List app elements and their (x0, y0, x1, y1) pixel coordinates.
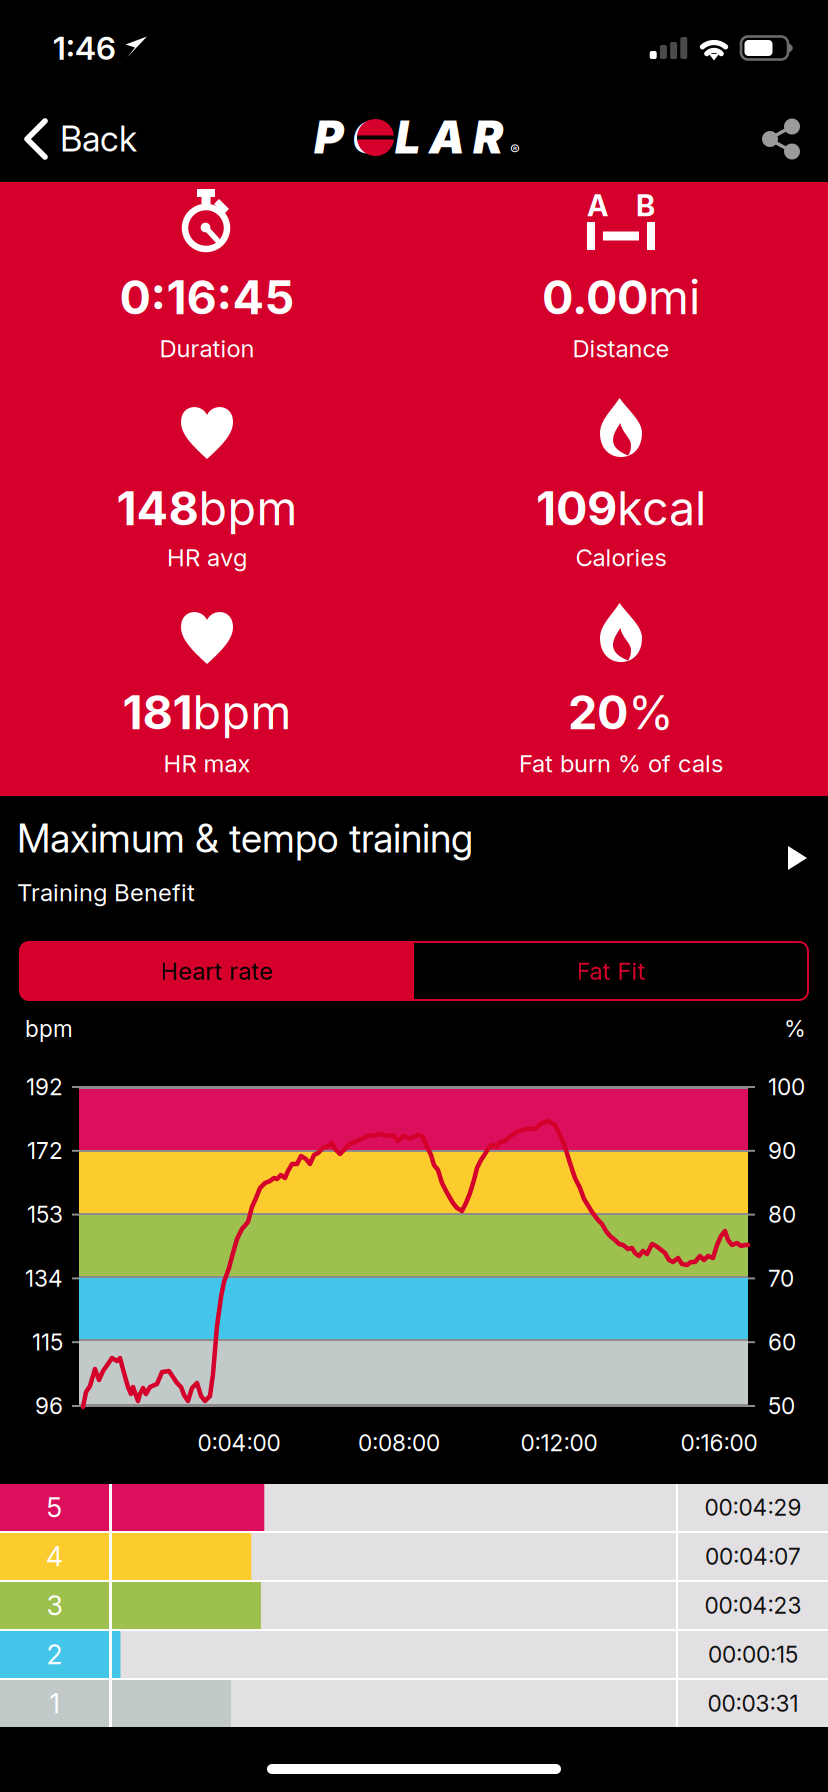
staticText: bpm (198, 480, 297, 536)
staticText: bpm (192, 684, 291, 740)
staticText: % (784, 1015, 806, 1042)
staticText: 1:46 (53, 29, 116, 67)
staticText: B (636, 188, 655, 223)
staticText: 0:12:00 (520, 1429, 597, 1457)
staticText: 115 (32, 1328, 63, 1356)
staticText: Duration (159, 334, 254, 363)
staticText: 96 (35, 1392, 63, 1420)
staticText: 50 (768, 1392, 795, 1420)
button[interactable]: Back (0, 96, 157, 182)
staticText: A (587, 188, 608, 223)
staticText: ® (510, 141, 520, 159)
staticText: mi (648, 269, 700, 325)
staticText: 90 (768, 1137, 796, 1164)
staticText: Training Benefit (17, 878, 195, 907)
staticText: 172 (27, 1137, 63, 1164)
staticText: 148 (116, 480, 198, 536)
staticText: HR avg (167, 543, 247, 572)
button[interactable]: Heart rate (20, 942, 414, 1000)
staticText: 0:16:45 (119, 269, 294, 325)
staticText: 4 (46, 1540, 63, 1573)
staticText: 100 (768, 1073, 805, 1101)
staticText: 192 (26, 1073, 63, 1101)
staticText: 2 (46, 1638, 62, 1671)
staticText: 00:03:31 (707, 1690, 798, 1717)
staticText: HR max (163, 749, 250, 778)
staticText: bpm (25, 1015, 73, 1042)
staticText: 1 (49, 1687, 59, 1720)
staticText: kcal (617, 480, 706, 536)
staticText: 153 (27, 1201, 63, 1228)
staticText: Back (60, 118, 137, 160)
staticText: 0:04:00 (197, 1429, 280, 1457)
staticText: 0:08:00 (358, 1429, 440, 1457)
staticText: 3 (46, 1589, 62, 1622)
staticText: 80 (768, 1201, 796, 1228)
staticText: 00:04:29 (704, 1494, 801, 1521)
staticText: 181 (122, 684, 192, 740)
staticText: Maximum & tempo training (17, 815, 473, 862)
button[interactable]: Share (732, 96, 828, 182)
staticText: 134 (25, 1265, 63, 1292)
staticText: 0:16:00 (680, 1429, 757, 1457)
staticText: POLAR (314, 110, 503, 164)
staticText: Distance (572, 334, 669, 363)
staticText: 20 (568, 684, 628, 740)
staticText: % (628, 684, 674, 740)
staticText: 60 (768, 1328, 796, 1356)
staticText: Fat burn % of cals (519, 749, 723, 778)
staticText: 109 (536, 480, 617, 536)
staticText: 00:00:15 (708, 1641, 798, 1668)
staticText: Calories (575, 543, 666, 572)
staticText: Heart rate (160, 956, 273, 985)
staticText: 5 (46, 1491, 62, 1524)
staticText: Fat Fit (576, 956, 645, 985)
staticText: 0.00 (542, 269, 648, 325)
button[interactable]: Show training benefit details (764, 822, 828, 894)
button[interactable]: Fat Fit (414, 942, 808, 1000)
staticText: 00:04:07 (705, 1543, 801, 1570)
staticText: 00:04:23 (704, 1592, 801, 1619)
staticText: 70 (768, 1265, 794, 1292)
